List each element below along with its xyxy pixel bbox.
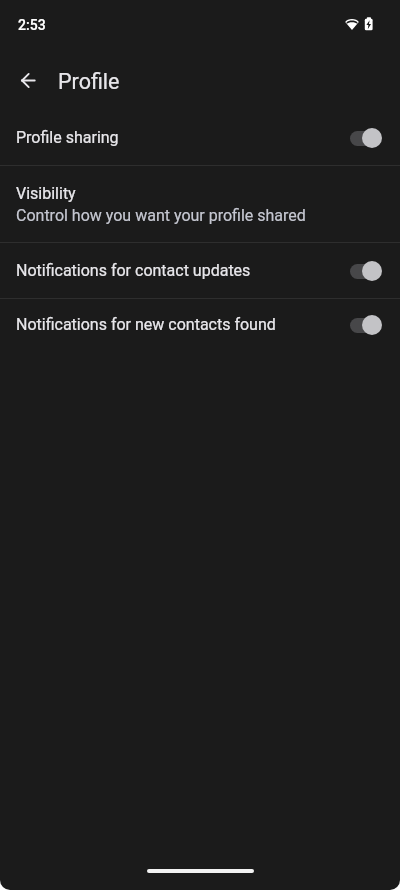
button[interactable]: Profile sharing [0, 110, 400, 165]
button[interactable]: Visibility [0, 166, 400, 242]
button[interactable]: Profile sharing toggle, on [350, 128, 382, 148]
staticText: Profile sharing [16, 128, 119, 147]
staticText: Visibility [16, 184, 76, 203]
staticText: 2:53 [18, 17, 46, 33]
staticText: Control how you want your profile shared [16, 206, 306, 225]
staticText: Notifications for new contacts found [16, 315, 276, 334]
button[interactable]: Back [4, 56, 52, 104]
button[interactable]: Notifications for contact updates toggle… [350, 261, 382, 281]
button[interactable]: Notifications for new contacts found tog… [350, 315, 382, 335]
staticText: Notifications for contact updates [16, 261, 251, 280]
button[interactable]: Notifications for contact updates [0, 243, 400, 298]
staticText: Profile [58, 69, 120, 94]
button[interactable]: Notifications for new contacts found [0, 299, 400, 350]
